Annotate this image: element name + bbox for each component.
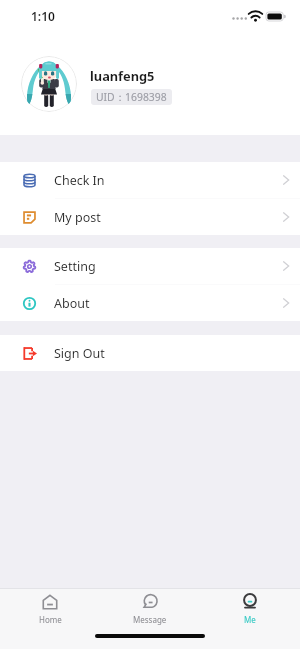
staticText: About [54,295,90,312]
button[interactable]: Sign Out [0,335,300,371]
staticText: My post [54,209,101,226]
staticText: Setting [54,258,96,275]
staticText: Message [133,614,167,625]
button[interactable]: Home [0,589,100,625]
button[interactable]: Check In [0,162,300,198]
button[interactable]: UID：1698398 [91,89,172,105]
staticText: UID：1698398 [96,90,167,104]
button[interactable]: Me [200,589,300,625]
staticText: luanfeng5 [90,67,155,84]
button[interactable]: Setting [0,248,300,284]
button[interactable]: My post [0,199,300,235]
staticText: 1:10 [31,8,55,24]
staticText: Home [39,614,62,625]
button[interactable]: luanfeng5 [90,67,155,84]
button[interactable]: Profile picture [21,56,77,112]
button[interactable]: About [0,285,300,321]
staticText: Check In [54,172,105,189]
button[interactable]: Message [100,589,200,625]
staticText: Sign Out [54,345,105,362]
staticText: Me [244,614,256,625]
